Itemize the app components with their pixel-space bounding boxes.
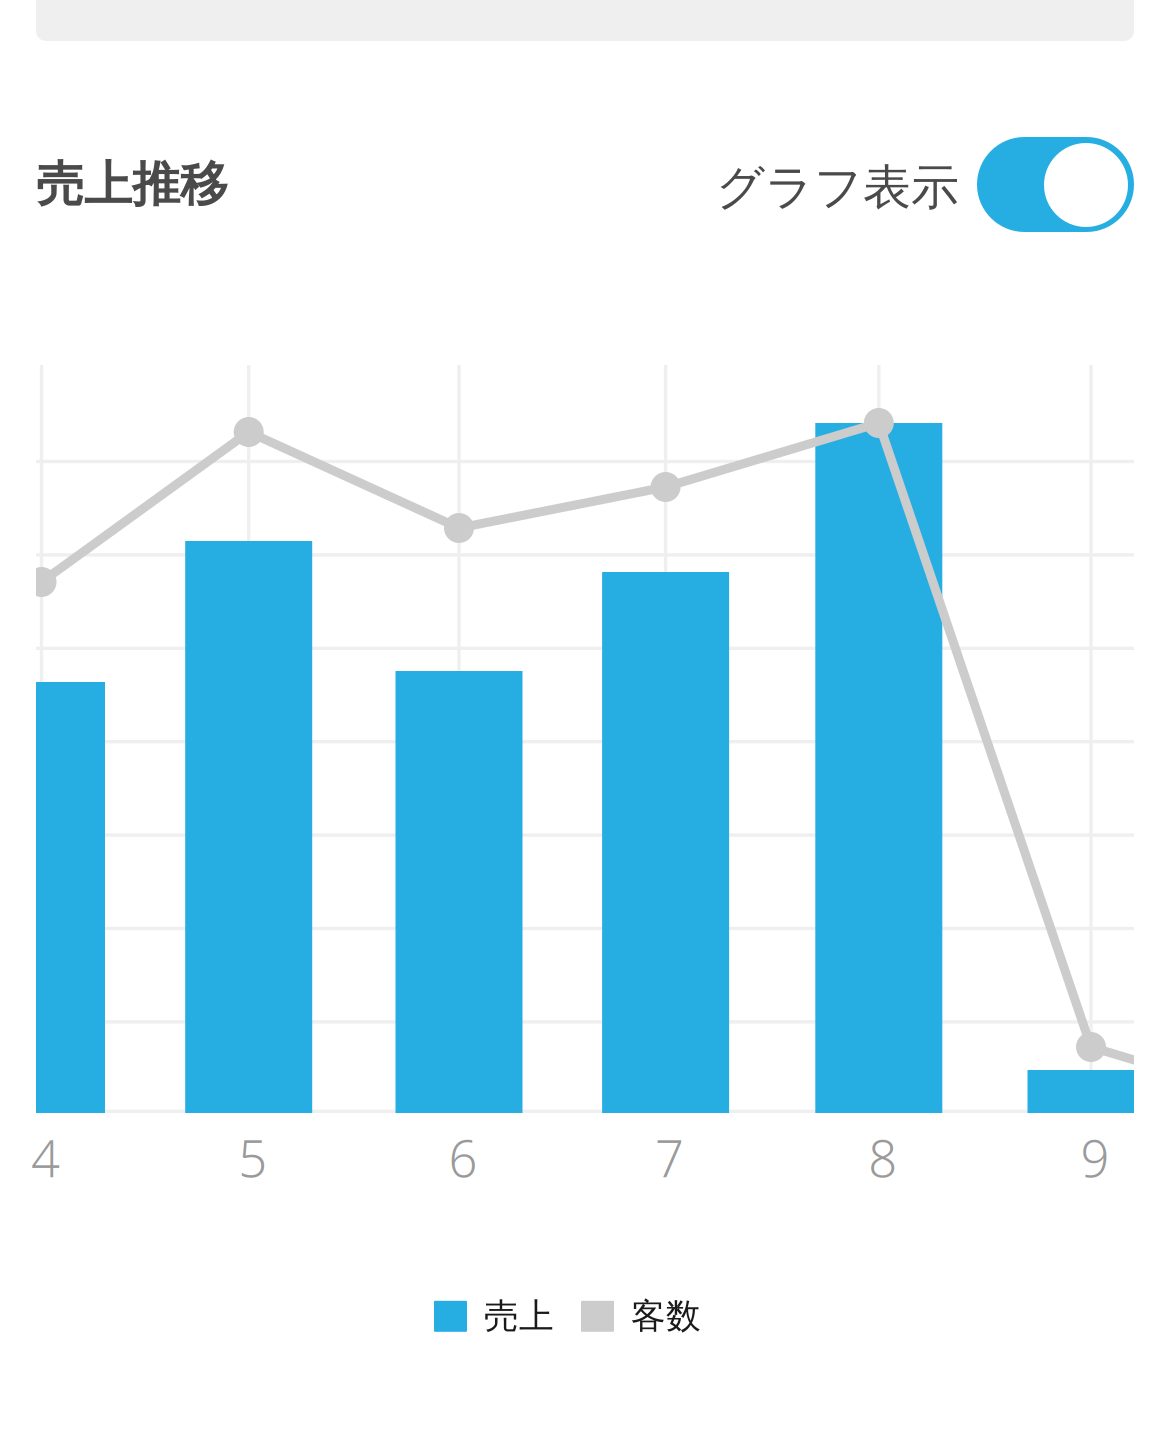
staticText: 6: [448, 1124, 477, 1191]
staticText: 9: [1080, 1124, 1109, 1191]
button[interactable]: グラフ表示: [977, 137, 1134, 232]
staticText: グラフ表示: [716, 158, 959, 217]
staticText: 売上推移: [36, 155, 228, 214]
staticText: 売上: [484, 1295, 554, 1338]
staticText: 7: [655, 1124, 684, 1191]
staticText: 8: [868, 1124, 897, 1191]
staticText: 客数: [631, 1295, 701, 1338]
staticText: 5: [238, 1124, 267, 1191]
staticText: 4: [31, 1124, 60, 1191]
